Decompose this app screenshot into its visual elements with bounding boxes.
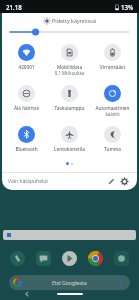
button[interactable]: Älä häiritse: [5, 84, 48, 112]
button[interactable]: Play: [62, 251, 77, 266]
button[interactable]: Automaattinen: [91, 84, 134, 118]
button[interactable]: Brightness: [10, 27, 129, 37]
button[interactable]: Back: [24, 291, 30, 297]
button[interactable]: [3, 230, 136, 240]
button[interactable]: Lentokonetila: [48, 125, 91, 153]
staticText: 21.18: [6, 3, 22, 11]
staticText: Mobiilidata: [48, 64, 91, 70]
staticText: Vain hätäpuhelut: [8, 178, 105, 185]
staticText: 0.1 Mt/kuukka: [48, 70, 91, 76]
button[interactable]: Home: [57, 293, 83, 295]
button[interactable]: Tumma: [91, 125, 134, 153]
button[interactable]: Camera: [114, 251, 129, 266]
staticText: Lentokonetila: [48, 146, 91, 152]
button[interactable]: Bluetooth: [5, 125, 48, 153]
button[interactable]: Mobiilidata: [48, 43, 91, 77]
staticText: kääntö: [91, 111, 134, 117]
button[interactable]: Settings: [118, 175, 131, 188]
button[interactable]: Virransääst: [91, 43, 134, 71]
staticText: Bluetooth: [5, 146, 48, 152]
staticText: 420001: [5, 64, 48, 70]
button[interactable]: Messages: [36, 251, 51, 266]
staticText: Älä häiritse: [5, 105, 48, 111]
button[interactable]: Edit tiles: [105, 175, 118, 188]
staticText: Automaattinen: [91, 105, 134, 111]
button[interactable]: Chrome: [88, 251, 103, 266]
staticText: Etsi Googlesta: [52, 279, 87, 286]
staticText: 13%: [121, 3, 134, 11]
button[interactable]: 420001: [5, 43, 48, 71]
staticText: Tumma: [91, 146, 134, 152]
staticText: Taskulamppu: [48, 105, 91, 111]
staticText: Virransääst: [91, 64, 134, 70]
button[interactable]: Etsi Googlesta: [9, 275, 130, 290]
staticText: Pidetty käynnissä: [52, 17, 96, 24]
button[interactable]: Phone: [10, 251, 25, 266]
button[interactable]: Taskulamppu: [48, 84, 91, 112]
